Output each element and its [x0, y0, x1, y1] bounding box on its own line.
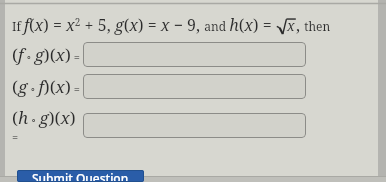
button[interactable] [83, 113, 306, 138]
staticText: , then [296, 14, 331, 36]
staticText: (f ∘ g)(x) = [12, 43, 80, 66]
button[interactable]: Submit Question [17, 170, 144, 182]
staticText: Submit Question [32, 170, 129, 182]
staticText: (g ∘ f)(x) = [12, 75, 80, 98]
staticText: (h ∘ g)(x) = [12, 106, 83, 144]
button[interactable] [83, 74, 306, 99]
staticText: x [287, 16, 295, 35]
staticText: If f(x) = x2 + 5, g(x) = x − 9, and h(x)… [12, 14, 276, 36]
button[interactable] [83, 42, 306, 67]
